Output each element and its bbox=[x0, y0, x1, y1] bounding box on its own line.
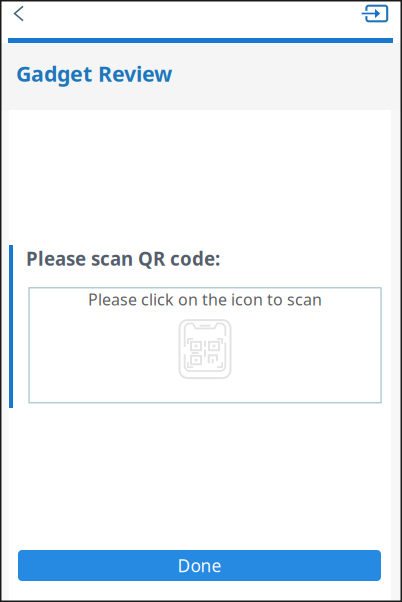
staticText: Please scan QR code: bbox=[26, 246, 220, 271]
button[interactable]: Back bbox=[0, 0, 47, 37]
staticText: Gadget Review bbox=[16, 59, 172, 88]
staticText: Please click on the icon to scan bbox=[88, 289, 322, 310]
button[interactable]: Please click on the icon to scan bbox=[29, 288, 381, 403]
button[interactable]: Sign out bbox=[354, 0, 402, 37]
button[interactable]: Done bbox=[18, 550, 381, 581]
staticText: Done bbox=[177, 554, 221, 577]
